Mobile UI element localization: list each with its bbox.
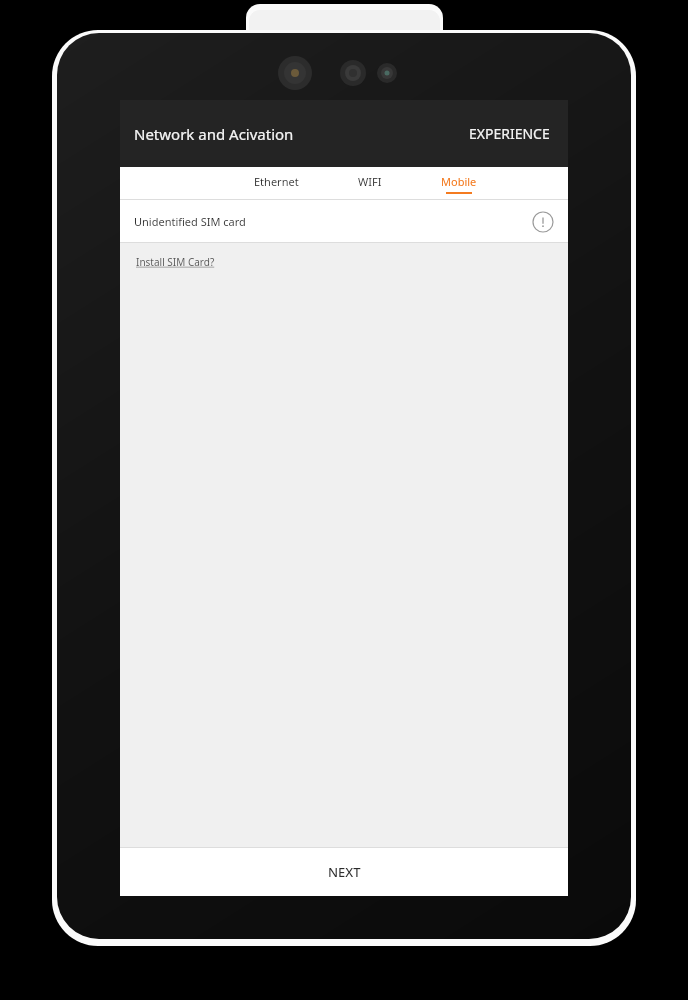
staticText: Install SIM Card? (136, 255, 215, 269)
button[interactable]: EXPERIENCE (465, 118, 554, 149)
staticText: NEXT (328, 863, 361, 881)
staticText: Mobile (441, 174, 477, 189)
staticText: Unidentified SIM card (134, 214, 246, 229)
staticText: Network and Acivation (134, 124, 294, 144)
button[interactable]: NEXT (120, 847, 568, 896)
staticText: EXPERIENCE (469, 124, 550, 143)
button[interactable]: Install SIM Card? (134, 251, 217, 273)
button[interactable]: Unidentified SIM card (120, 200, 568, 243)
button[interactable]: WIFI (351, 171, 389, 197)
staticText: WIFI (358, 174, 382, 189)
button[interactable]: Mobile (435, 171, 483, 197)
staticText: Ethernet (254, 174, 299, 189)
button[interactable]: Ethernet (248, 171, 305, 197)
other: Warning (532, 211, 554, 233)
